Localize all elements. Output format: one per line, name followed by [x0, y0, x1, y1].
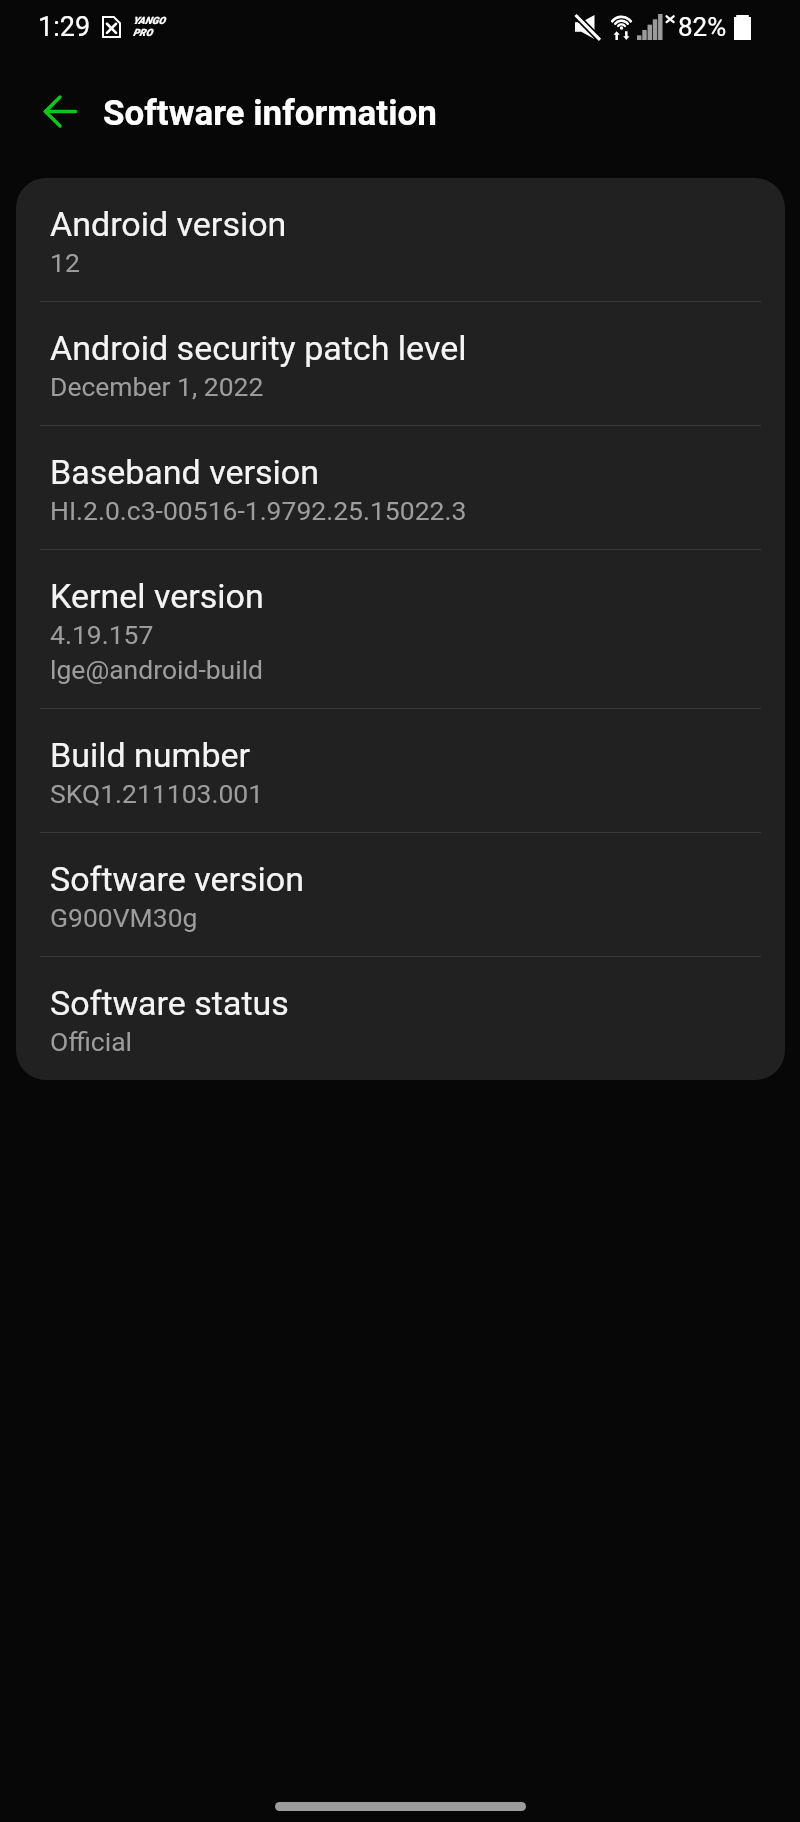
staticText: Official — [50, 1026, 133, 1057]
staticText: 82% — [678, 12, 727, 42]
staticText: Baseband version — [50, 452, 320, 492]
staticText: Software status — [50, 983, 289, 1023]
button[interactable]: Android security patch level — [16, 302, 785, 425]
staticText: Android version — [50, 204, 287, 244]
staticText: Software information — [103, 93, 437, 134]
staticText: SKQ1.211103.001 — [50, 778, 264, 809]
staticText: 4.19.157 — [50, 619, 154, 650]
button[interactable]: Software status — [16, 957, 785, 1080]
staticText: lge@android-build — [50, 654, 264, 685]
button[interactable]: Build number — [16, 709, 785, 832]
staticText: Android security patch level — [50, 328, 467, 368]
staticText: Kernel version — [50, 576, 264, 616]
staticText: Build number — [50, 735, 251, 775]
staticText: 12 — [50, 247, 80, 278]
staticText: HI.2.0.c3-00516-1.9792.25.15022.3 — [50, 495, 467, 526]
button[interactable]: Android version — [16, 178, 785, 301]
button[interactable]: Software version — [16, 833, 785, 956]
staticText: PRO — [133, 27, 153, 39]
staticText: YANGO — [133, 15, 166, 27]
staticText: 1:29 — [38, 11, 91, 43]
staticText: G900VM30g — [50, 902, 198, 933]
button[interactable]: Back — [35, 86, 85, 136]
button[interactable]: Kernel version — [16, 550, 785, 708]
staticText: Software version — [50, 859, 305, 899]
staticText: December 1, 2022 — [50, 371, 264, 402]
button[interactable]: Baseband version — [16, 426, 785, 549]
